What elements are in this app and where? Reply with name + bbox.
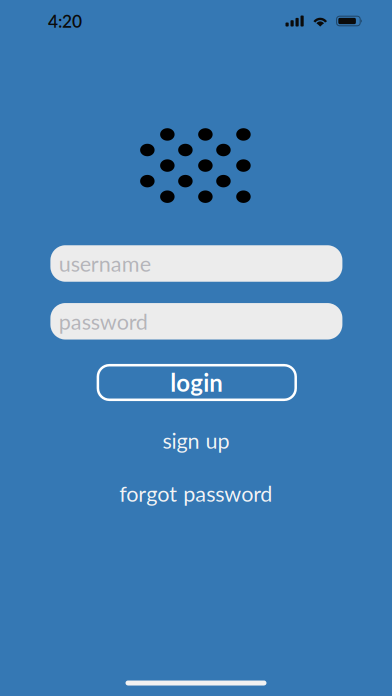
button[interactable]: login bbox=[98, 365, 296, 400]
staticText: login bbox=[170, 368, 223, 397]
staticText: 4:20 bbox=[48, 11, 82, 31]
staticText: forgot password bbox=[119, 480, 272, 506]
button[interactable]: forgot password bbox=[86, 480, 306, 506]
staticText: username bbox=[59, 250, 151, 276]
button[interactable]: username bbox=[50, 245, 342, 282]
button[interactable]: sign up bbox=[86, 427, 306, 453]
staticText: sign up bbox=[162, 427, 229, 453]
button[interactable]: password bbox=[50, 303, 342, 340]
staticText: password bbox=[59, 308, 148, 334]
